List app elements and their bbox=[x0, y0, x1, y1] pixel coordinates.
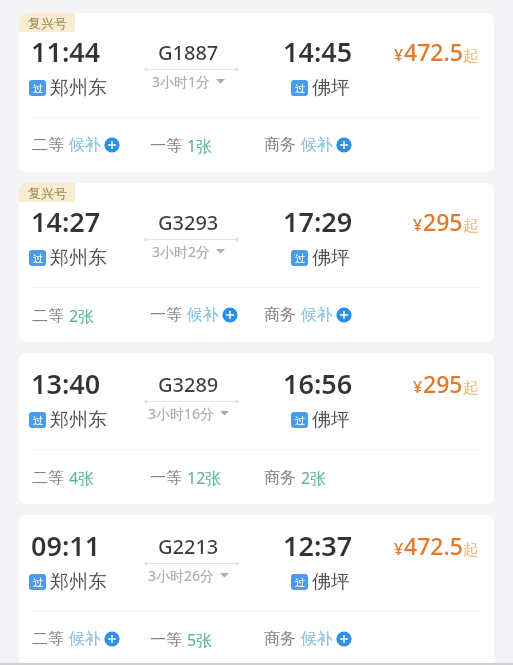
staticText: 3小时16分 bbox=[148, 404, 215, 423]
staticText: 14:27 bbox=[31, 203, 101, 240]
staticText: 13:40 bbox=[31, 365, 101, 402]
staticText: 郑州东 bbox=[50, 408, 107, 432]
staticText: 候补 bbox=[69, 135, 101, 155]
staticText: 09:11 bbox=[31, 527, 101, 564]
staticText: 候补 bbox=[187, 305, 219, 325]
staticText: 472.5 bbox=[404, 530, 463, 561]
button[interactable]: 复兴号 bbox=[19, 13, 494, 172]
button[interactable]: 商务 bbox=[264, 305, 352, 325]
staticText: 一等 bbox=[150, 305, 182, 325]
button[interactable]: 一等 bbox=[150, 629, 213, 651]
staticText: 5张 bbox=[187, 629, 213, 651]
staticText: G3293 bbox=[158, 209, 219, 236]
staticText: 商务 bbox=[264, 305, 296, 325]
staticText: 过 bbox=[33, 252, 43, 265]
staticText: 候补 bbox=[301, 135, 333, 155]
staticText: 过 bbox=[295, 82, 305, 95]
staticText: 起 bbox=[463, 46, 479, 66]
staticText: 商务 bbox=[264, 135, 296, 155]
staticText: 一等 bbox=[150, 136, 182, 156]
staticText: 295 bbox=[423, 206, 463, 237]
staticText: 郑州东 bbox=[50, 570, 107, 594]
staticText: 17:29 bbox=[283, 203, 353, 240]
button[interactable]: 一等 bbox=[150, 467, 222, 489]
staticText: ¥ bbox=[394, 538, 404, 560]
button[interactable]: 复兴号 bbox=[19, 183, 494, 342]
staticText: G1887 bbox=[158, 39, 219, 66]
staticText: 候补 bbox=[301, 629, 333, 649]
staticText: 过 bbox=[295, 252, 305, 265]
staticText: 过 bbox=[33, 576, 43, 589]
button[interactable]: 13:40 bbox=[19, 353, 494, 504]
button[interactable]: 商务 bbox=[264, 629, 352, 649]
staticText: ¥ bbox=[413, 214, 423, 236]
staticText: 16:56 bbox=[283, 365, 353, 402]
staticText: 佛坪 bbox=[312, 76, 350, 100]
staticText: 14:45 bbox=[283, 33, 353, 70]
staticText: 起 bbox=[463, 540, 479, 560]
staticText: 一等 bbox=[150, 468, 182, 488]
staticText: 3小时2分 bbox=[152, 242, 211, 261]
staticText: 二等 bbox=[32, 629, 64, 649]
staticText: 起 bbox=[463, 216, 479, 236]
staticText: 二等 bbox=[32, 306, 64, 326]
staticText: 佛坪 bbox=[312, 570, 350, 594]
staticText: ¥ bbox=[394, 44, 404, 66]
staticText: 2张 bbox=[301, 467, 327, 489]
staticText: 复兴号 bbox=[28, 185, 67, 201]
staticText: 12:37 bbox=[283, 527, 353, 564]
button[interactable]: 一等 bbox=[150, 135, 213, 157]
staticText: 3小时26分 bbox=[148, 566, 215, 585]
staticText: 复兴号 bbox=[28, 15, 67, 31]
button[interactable]: 二等 bbox=[32, 629, 120, 649]
staticText: 佛坪 bbox=[312, 246, 350, 270]
button[interactable]: 商务 bbox=[264, 467, 327, 489]
staticText: 过 bbox=[33, 414, 43, 427]
staticText: 3小时1分 bbox=[152, 72, 211, 91]
staticText: 过 bbox=[295, 414, 305, 427]
staticText: 295 bbox=[423, 368, 463, 399]
staticText: 二等 bbox=[32, 135, 64, 155]
staticText: G3289 bbox=[158, 371, 219, 398]
staticText: 佛坪 bbox=[312, 408, 350, 432]
staticText: 11:44 bbox=[31, 33, 101, 70]
staticText: 郑州东 bbox=[50, 76, 107, 100]
staticText: G2213 bbox=[158, 533, 219, 560]
staticText: 一等 bbox=[150, 630, 182, 650]
button[interactable]: 商务 bbox=[264, 135, 352, 155]
staticText: 过 bbox=[295, 576, 305, 589]
staticText: 472.5 bbox=[404, 36, 463, 67]
staticText: 二等 bbox=[32, 468, 64, 488]
staticText: 4张 bbox=[69, 467, 95, 489]
staticText: 商务 bbox=[264, 468, 296, 488]
button[interactable]: 二等 bbox=[32, 135, 120, 155]
staticText: 候补 bbox=[69, 629, 101, 649]
staticText: 12张 bbox=[187, 467, 222, 489]
button[interactable]: 二等 bbox=[32, 305, 95, 327]
staticText: 过 bbox=[33, 82, 43, 95]
staticText: 2张 bbox=[69, 305, 95, 327]
staticText: ¥ bbox=[413, 376, 423, 398]
staticText: 商务 bbox=[264, 629, 296, 649]
staticText: 候补 bbox=[301, 305, 333, 325]
button[interactable]: 09:11 bbox=[19, 515, 494, 665]
button[interactable]: 二等 bbox=[32, 467, 95, 489]
staticText: 1张 bbox=[187, 135, 213, 157]
button[interactable]: 一等 bbox=[150, 305, 238, 325]
staticText: 起 bbox=[463, 378, 479, 398]
staticText: 郑州东 bbox=[50, 246, 107, 270]
